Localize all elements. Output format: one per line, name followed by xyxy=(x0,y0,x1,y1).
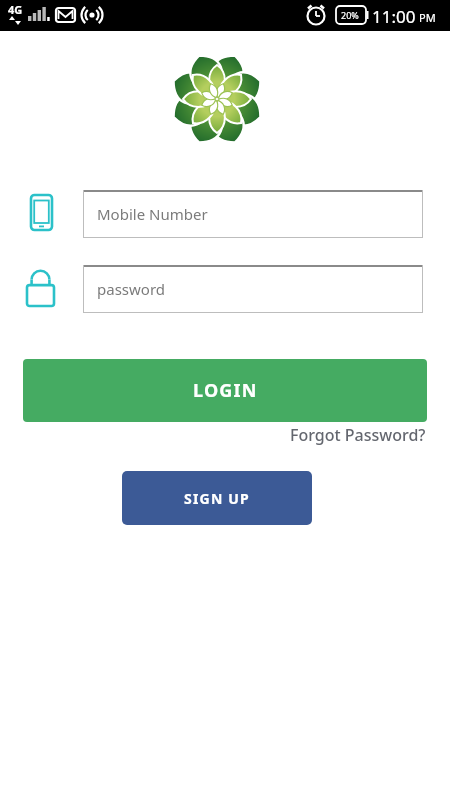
staticText: 4G xyxy=(8,2,23,17)
button[interactable]: password xyxy=(84,265,422,312)
button[interactable]: Mobile Number xyxy=(84,190,422,237)
button[interactable]: LOGIN xyxy=(23,359,427,422)
staticText: password xyxy=(97,279,165,299)
staticText: SIGN UP xyxy=(184,489,250,508)
staticText: LOGIN xyxy=(193,378,258,403)
staticText: Forgot Password? xyxy=(290,424,426,446)
button[interactable]: SIGN UP xyxy=(122,471,312,525)
button[interactable]: Forgot Password? xyxy=(280,424,426,446)
staticText: Mobile Number xyxy=(97,204,208,224)
staticText: 20% xyxy=(341,9,359,21)
staticText: 11:00 xyxy=(372,5,416,28)
staticText: PM xyxy=(419,10,436,25)
